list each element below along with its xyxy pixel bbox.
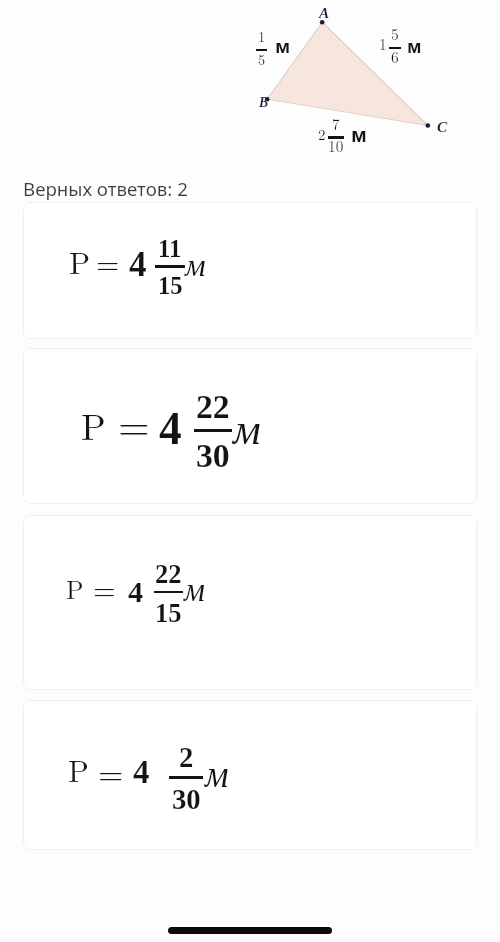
staticText: P xyxy=(81,399,106,450)
staticText: = xyxy=(118,394,150,452)
staticText: 15 xyxy=(158,272,183,299)
staticText: 5 xyxy=(258,49,266,69)
staticText: 30 xyxy=(172,783,201,815)
staticText: 4 xyxy=(128,575,144,608)
staticText: P xyxy=(68,748,89,791)
staticText: = xyxy=(98,748,124,794)
staticText: = xyxy=(93,567,116,608)
staticText: 10 xyxy=(328,135,344,157)
button[interactable]: P = 4 2/30 м xyxy=(23,700,477,850)
staticText: м xyxy=(233,405,261,453)
staticText: 2 xyxy=(318,123,326,144)
staticText: м xyxy=(185,247,206,283)
staticText: C xyxy=(437,118,448,135)
staticText: 2 xyxy=(179,741,194,773)
staticText: м xyxy=(275,34,291,59)
staticText: = xyxy=(96,240,120,283)
staticText: 6 xyxy=(391,46,399,68)
button[interactable]: P = 4 11/15 м xyxy=(23,202,477,339)
staticText: м xyxy=(407,35,422,59)
staticText: 1 xyxy=(379,33,387,55)
staticText: 30 xyxy=(196,437,230,474)
staticText: 22 xyxy=(196,388,230,425)
staticText: 4 xyxy=(129,245,147,284)
staticText: 11 xyxy=(158,235,182,262)
staticText: м xyxy=(351,122,367,148)
staticText: м xyxy=(205,754,229,795)
staticText: A xyxy=(319,4,330,21)
staticText: 4 xyxy=(159,404,182,454)
staticText: Верных ответов: 2 xyxy=(23,176,188,201)
staticText: 1 xyxy=(258,26,266,46)
staticText: 4 xyxy=(133,754,150,790)
button[interactable]: P = 4 22/15 м xyxy=(23,515,477,690)
staticText: B xyxy=(259,95,269,110)
staticText: м xyxy=(184,572,205,608)
staticText: 15 xyxy=(155,598,182,627)
staticText: P xyxy=(69,239,91,283)
button[interactable]: P = 4 22/30 м xyxy=(23,348,477,504)
staticText: 22 xyxy=(155,559,182,588)
staticText: P xyxy=(66,570,84,607)
staticText: 5 xyxy=(391,23,399,45)
staticText: 7 xyxy=(332,113,340,135)
